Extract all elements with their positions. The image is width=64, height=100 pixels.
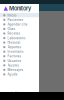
staticText: Inventario [7, 50, 23, 53]
button[interactable]: Citas [0, 27, 39, 31]
staticText: Recetas [7, 32, 20, 35]
button[interactable]: Facturas [0, 54, 39, 58]
button[interactable]: Laboratorio [0, 36, 39, 40]
staticText: Facturas [7, 54, 21, 58]
button[interactable]: Historial [0, 40, 39, 45]
button[interactable]: Mensajes [0, 68, 39, 72]
staticText: Mensajes [7, 68, 23, 72]
button[interactable]: Inventario [0, 49, 39, 54]
button[interactable]: Usuarios [0, 58, 39, 63]
staticText: Monitory [14, 91, 28, 95]
staticText: Ayuda [7, 73, 17, 76]
staticText: Inicio [7, 13, 16, 17]
staticText: Reportes [7, 45, 21, 49]
button[interactable]: Pacientes [0, 18, 39, 22]
staticText: Citas [7, 27, 15, 31]
button[interactable]: Agendar cita [0, 22, 39, 27]
staticText: Historial [7, 41, 20, 44]
button[interactable]: Inicio [0, 13, 39, 17]
button[interactable]: Ajustes [0, 63, 39, 67]
button[interactable]: Recetas [0, 31, 39, 36]
staticText: Monitory [9, 5, 31, 12]
staticText: Ajustes [7, 63, 19, 67]
button[interactable]: Ayuda [0, 72, 39, 77]
button[interactable]: Reportes [0, 45, 39, 49]
staticText: Agendar cita [7, 22, 27, 26]
staticText: Usuarios [7, 59, 21, 63]
staticText: Pacientes [7, 18, 23, 22]
staticText: Laboratorio [7, 36, 25, 40]
